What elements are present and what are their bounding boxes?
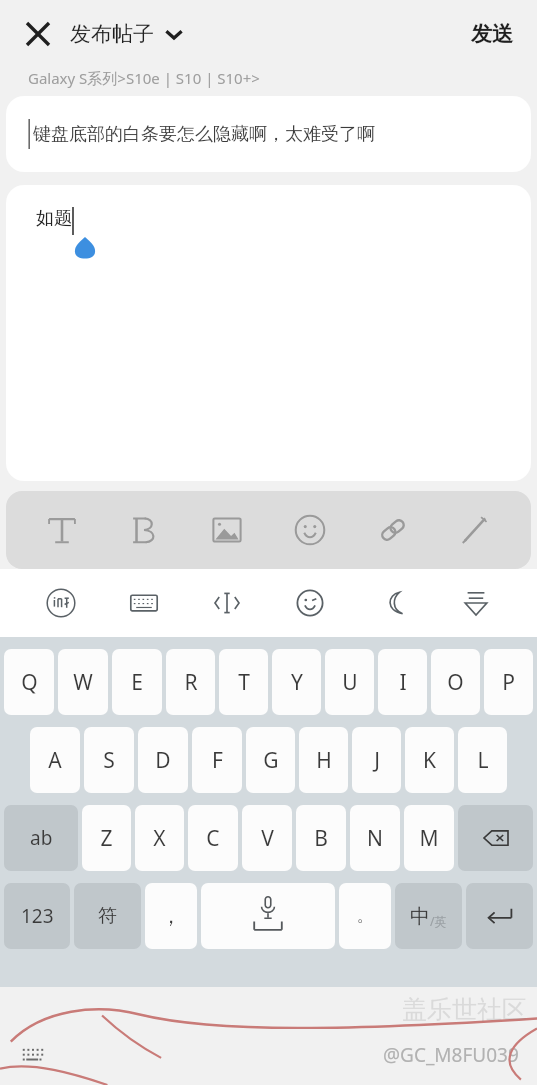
button[interactable]: Insert image	[200, 503, 254, 557]
staticText: 盖乐世社区	[402, 994, 527, 1025]
button[interactable]: Hide keyboard	[12, 1035, 52, 1075]
button[interactable]: Input method	[35, 577, 87, 629]
button[interactable]: R	[166, 649, 215, 715]
staticText: L	[477, 746, 489, 775]
staticText: ，	[161, 904, 181, 929]
button[interactable]: Keyboard settings	[118, 577, 170, 629]
staticText: T	[238, 668, 250, 697]
button[interactable]: I	[378, 649, 427, 715]
button[interactable]: Bold	[117, 503, 171, 557]
staticText: 发布帖子	[70, 21, 154, 47]
button[interactable]: E	[112, 649, 162, 715]
button[interactable]: G	[246, 727, 295, 793]
button[interactable]: K	[405, 727, 454, 793]
button[interactable]: Q	[4, 649, 54, 715]
staticText: H	[316, 746, 332, 775]
staticText: R	[184, 668, 198, 697]
button[interactable]: Insert link	[366, 503, 420, 557]
staticText: D	[155, 746, 171, 775]
staticText: Z	[100, 824, 113, 853]
button[interactable]: M	[404, 805, 454, 871]
button[interactable]: A	[30, 727, 80, 793]
staticText: F	[212, 746, 223, 775]
button[interactable]: X	[135, 805, 184, 871]
button[interactable]: Insert emoji	[283, 503, 337, 557]
button[interactable]: O	[431, 649, 480, 715]
staticText: O	[447, 668, 464, 697]
staticText: Galaxy S系列>S10e | S10 | S10+>	[28, 68, 260, 88]
staticText: I	[399, 668, 407, 697]
staticText: 发送	[471, 21, 513, 47]
button[interactable]: 发布帖子	[70, 21, 184, 47]
button[interactable]: 符	[74, 883, 141, 949]
staticText: S	[103, 746, 115, 775]
button[interactable]: Cursor control	[201, 577, 253, 629]
staticText: 123	[21, 903, 54, 929]
button[interactable]: 中	[395, 883, 462, 949]
button[interactable]: Z	[82, 805, 131, 871]
button[interactable]: S	[84, 727, 134, 793]
button[interactable]: Text style	[35, 503, 89, 557]
button[interactable]: 123	[4, 883, 70, 949]
staticText: G	[263, 746, 279, 775]
staticText: V	[261, 824, 274, 853]
button[interactable]: Enter	[466, 883, 533, 949]
staticText: M	[419, 824, 439, 853]
button[interactable]: Space	[201, 883, 335, 949]
button[interactable]: Close	[16, 12, 60, 56]
button[interactable]: Night mode	[367, 577, 419, 629]
staticText: Y	[291, 668, 303, 697]
staticText: A	[48, 746, 62, 775]
button[interactable]: B	[296, 805, 346, 871]
button[interactable]: Collapse	[450, 577, 502, 629]
button[interactable]: 键盘底部的白条要怎么隐藏啊，太难受了啊	[6, 96, 531, 172]
staticText: Q	[21, 668, 38, 697]
staticText: W	[73, 668, 93, 697]
button[interactable]: P	[484, 649, 533, 715]
staticText: N	[367, 824, 383, 853]
staticText: /英	[430, 913, 447, 929]
staticText: P	[502, 668, 515, 697]
button[interactable]: ，	[145, 883, 197, 949]
staticText: B	[314, 824, 328, 853]
button[interactable]: Y	[272, 649, 321, 715]
button[interactable]: Emoji	[284, 577, 336, 629]
button[interactable]: Backspace	[458, 805, 533, 871]
button[interactable]: 。	[339, 883, 391, 949]
staticText: C	[206, 824, 220, 853]
staticText: 。	[357, 906, 373, 926]
button[interactable]: 如题	[6, 185, 531, 481]
button[interactable]: W	[58, 649, 108, 715]
button[interactable]: L	[458, 727, 507, 793]
staticText: 如题	[36, 207, 72, 230]
staticText: @GC_M8FU039	[383, 1042, 519, 1068]
button[interactable]: 发送	[465, 15, 519, 53]
button[interactable]: Draw	[448, 503, 502, 557]
button[interactable]: F	[192, 727, 242, 793]
button[interactable]: V	[242, 805, 292, 871]
button[interactable]: U	[325, 649, 374, 715]
staticText: 键盘底部的白条要怎么隐藏啊，太难受了啊	[33, 123, 375, 146]
button[interactable]: H	[299, 727, 348, 793]
button[interactable]: C	[188, 805, 238, 871]
button[interactable]: Galaxy S系列>S10e | S10 | S10+>	[28, 68, 537, 88]
button[interactable]: ab	[4, 805, 78, 871]
button[interactable]: T	[219, 649, 268, 715]
staticText: K	[423, 746, 436, 775]
button[interactable]: J	[352, 727, 401, 793]
staticText: J	[374, 746, 380, 775]
staticText: X	[153, 824, 166, 853]
staticText: E	[131, 668, 143, 697]
staticText: ab	[30, 825, 53, 851]
staticText: U	[342, 668, 358, 697]
staticText: 中	[410, 904, 430, 929]
button[interactable]: N	[350, 805, 400, 871]
staticText: 符	[98, 904, 117, 928]
button[interactable]: D	[138, 727, 188, 793]
